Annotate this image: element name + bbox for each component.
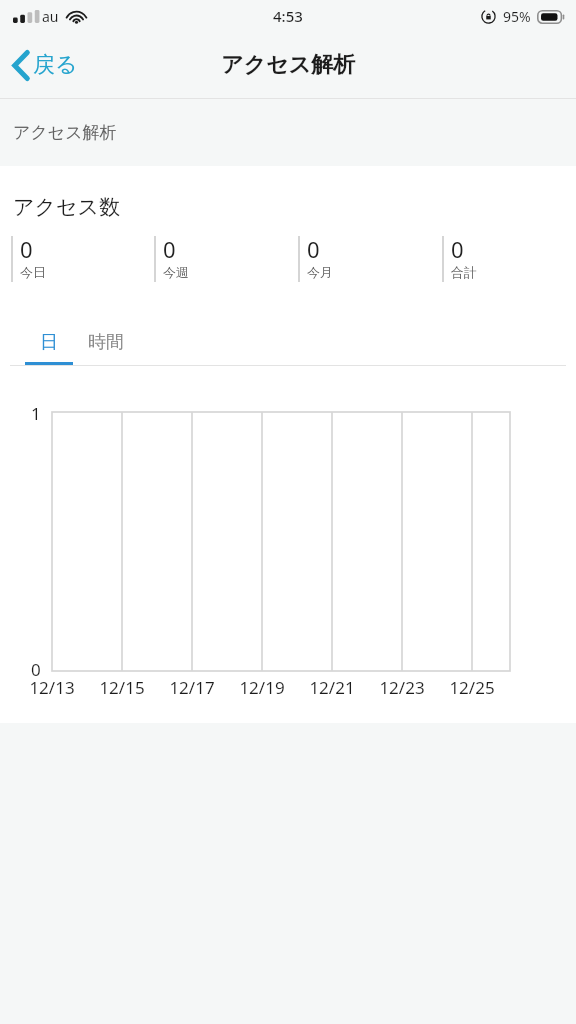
staticText: 合計 [451, 264, 477, 280]
button[interactable]: 日 [25, 318, 73, 366]
staticText: 今週 [163, 264, 189, 280]
staticText: 1 [31, 402, 41, 425]
staticText: 時間 [88, 331, 124, 354]
staticText: 12/21 [309, 676, 355, 699]
staticText: アクセス解析 [13, 122, 117, 143]
staticText: 12/19 [239, 676, 285, 699]
button[interactable]: 0 [432, 234, 576, 284]
staticText: アクセス数 [13, 194, 120, 220]
staticText: 12/25 [449, 676, 495, 699]
staticText: 0 [307, 234, 320, 264]
staticText: 0 [20, 234, 33, 264]
staticText: アクセス解析 [221, 51, 356, 79]
staticText: 12/13 [29, 676, 75, 699]
staticText: 日 [40, 331, 58, 354]
staticText: 今日 [20, 264, 46, 280]
staticText: 95% [503, 7, 531, 26]
staticText: 12/15 [99, 676, 145, 699]
button[interactable]: 戻る [0, 32, 92, 98]
button[interactable]: 0 [144, 234, 288, 284]
staticText: 4:53 [273, 6, 303, 26]
staticText: 戻る [33, 51, 78, 79]
button[interactable]: 時間 [77, 318, 135, 366]
staticText: 0 [451, 234, 464, 264]
staticText: 0 [31, 658, 41, 681]
button[interactable]: 0 [0, 234, 144, 284]
staticText: 今月 [307, 264, 333, 280]
staticText: 12/23 [379, 676, 425, 699]
staticText: 12/17 [169, 676, 215, 699]
staticText: au [42, 7, 59, 26]
button[interactable]: 0 [288, 234, 432, 284]
staticText: 0 [163, 234, 176, 264]
